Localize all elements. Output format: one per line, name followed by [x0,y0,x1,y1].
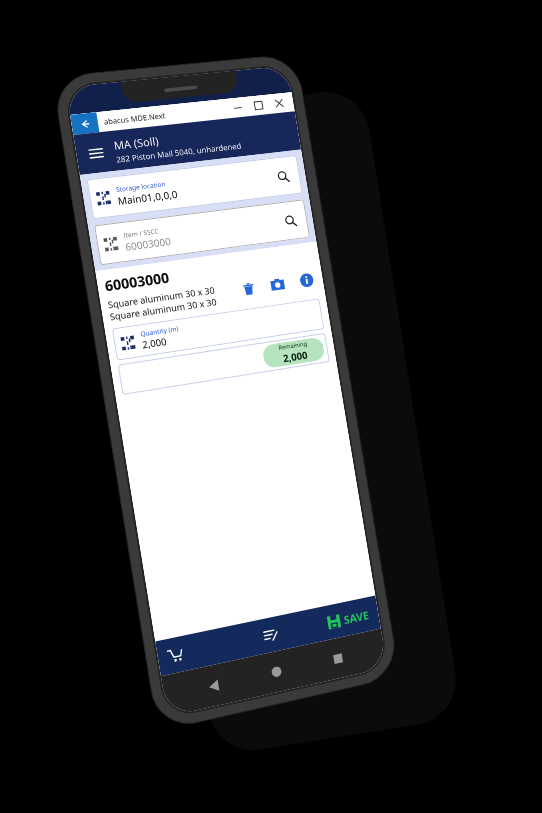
button[interactable]: Camera [266,273,289,295]
staticText: Square aluminum 30 x 30 [109,295,218,322]
button[interactable]: Quantity (m) [112,298,324,361]
button[interactable]: min [226,97,250,118]
staticText: MA (Soll) [113,133,160,153]
button[interactable]: Cart [155,626,236,676]
staticText: Remaining [278,340,308,352]
button[interactable]: Info [296,269,318,291]
button[interactable]: Back [70,112,99,135]
button[interactable]: Item / SSCC [94,199,310,265]
staticText: Quantity (m) [140,324,180,338]
staticText: Storage location [115,179,166,194]
button[interactable]: Search [278,208,302,232]
staticText: 60003000 [124,234,172,254]
staticText: 2,000 [282,348,309,365]
staticText: abacus MDE.Next [103,110,166,127]
button[interactable]: Menu [83,141,108,165]
staticText: 2,000 [141,335,168,351]
button[interactable]: Recents [322,642,353,675]
button[interactable]: close [267,93,291,114]
button[interactable]: Remaining [261,336,326,369]
staticText: Main01,0,0,0 [117,187,179,208]
button[interactable]: Back [198,668,230,703]
button[interactable]: Delete [237,277,259,300]
staticText: 60003000 [103,267,171,295]
staticText: Square aluminum 30 x 30 [107,283,216,310]
button[interactable]: max [247,95,270,116]
staticText: 282 Piston Mail 5040, unhardened [115,140,243,165]
button[interactable]: Search [271,164,295,188]
button[interactable]: Home [261,655,292,689]
staticText: Item / SSCC [123,226,160,240]
staticText: SAVE [343,607,370,627]
button[interactable]: Storage location [87,155,303,219]
button[interactable]: SAVE [304,595,381,644]
button[interactable]: List [231,610,310,660]
